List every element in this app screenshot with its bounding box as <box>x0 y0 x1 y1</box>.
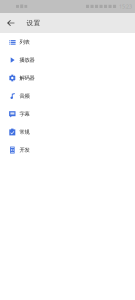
staticText: 设置 <box>26 19 40 27</box>
button[interactable]: 返回 <box>0 13 21 33</box>
button[interactable]: 开发 <box>0 141 135 159</box>
button[interactable]: 播放器 <box>0 51 135 69</box>
button[interactable]: 解码器 <box>0 69 135 87</box>
staticText: 常规 <box>19 129 29 135</box>
staticText: 解码器 <box>19 75 34 81</box>
staticText: 列表 <box>19 39 29 45</box>
button[interactable]: 常规 <box>0 123 135 141</box>
button[interactable]: 字幕 <box>0 105 135 123</box>
staticText: 字幕 <box>19 111 29 117</box>
button[interactable]: 列表 <box>0 33 135 51</box>
button[interactable]: 音频 <box>0 87 135 105</box>
staticText: 15:23 <box>119 3 132 10</box>
staticText: 开发 <box>19 147 29 153</box>
staticText: 播放器 <box>19 57 34 63</box>
staticText: 音频 <box>19 93 29 99</box>
